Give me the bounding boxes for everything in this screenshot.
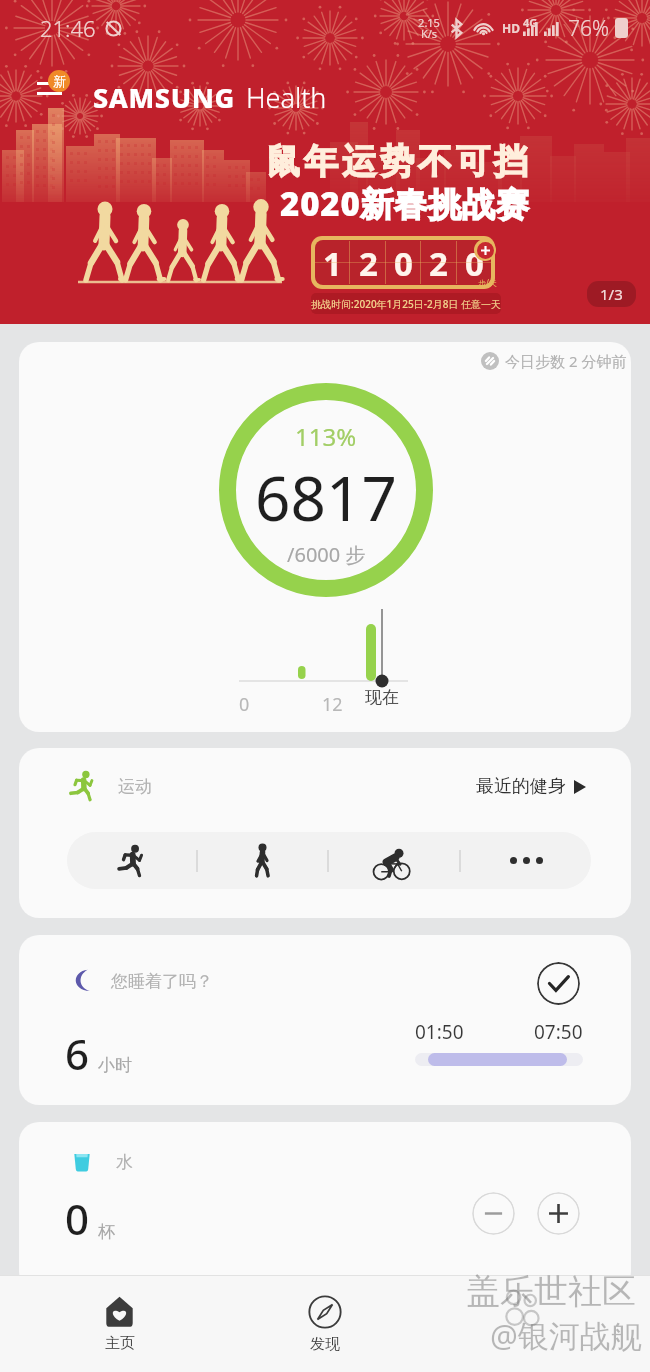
staticText: 07:50 xyxy=(534,1019,583,1045)
button[interactable]: 今日步数 2 分钟前 xyxy=(481,351,627,371)
button[interactable]: 发现 xyxy=(271,1275,379,1372)
staticText: 21:46 xyxy=(40,13,96,43)
staticText: 今日步数 2 分钟前 xyxy=(505,351,627,371)
staticText: 鼠年运势不可挡 xyxy=(264,140,530,183)
staticText: 1/3 xyxy=(600,284,623,304)
staticText: 113% xyxy=(295,420,357,453)
button[interactable]: Running xyxy=(67,832,196,889)
button[interactable]: Walking xyxy=(198,832,327,889)
staticText: 挑战时间:2020年1月25日-2月8日 任意一天 xyxy=(311,297,501,311)
staticText: 您睡着了吗？ xyxy=(111,971,213,992)
staticText: 0 xyxy=(239,692,250,717)
button[interactable]: 主页 xyxy=(65,1275,173,1372)
staticText: 盖乐世社区 xyxy=(466,1270,636,1313)
staticText: 水 xyxy=(116,1152,133,1173)
staticText: 0 xyxy=(394,241,413,284)
button[interactable]: Cycling xyxy=(329,832,459,889)
button[interactable]: 最近的健身 xyxy=(476,775,586,798)
staticText: @银河战舰 xyxy=(490,1314,642,1356)
staticText: 2020新春挑战赛 xyxy=(280,181,530,226)
button[interactable]: Increase water xyxy=(537,1192,580,1235)
staticText: /6000 步 xyxy=(287,541,366,568)
button[interactable]: More xyxy=(461,832,591,889)
staticText: 0 xyxy=(65,1190,90,1247)
staticText: 12 xyxy=(322,692,343,717)
staticText: 6817 xyxy=(255,455,397,539)
staticText: 1 xyxy=(323,241,342,284)
staticText: 步/天 xyxy=(478,277,497,288)
staticText: HD xyxy=(502,20,520,36)
staticText: 小时 xyxy=(98,1055,132,1076)
staticText: Health xyxy=(246,79,327,116)
staticText: 01:50 xyxy=(415,1019,464,1045)
staticText: SAMSUNG xyxy=(93,79,235,116)
staticText: 2 xyxy=(429,241,448,284)
button[interactable]: Decrease water xyxy=(472,1192,515,1235)
staticText: 运动 xyxy=(118,776,152,797)
staticText: 6 xyxy=(65,1025,90,1082)
staticText: 现在 xyxy=(365,687,399,708)
staticText: 杯 xyxy=(98,1221,115,1242)
staticText: 2.15 K/s xyxy=(418,15,440,42)
staticText: 主页 xyxy=(105,1334,135,1353)
staticText: 新 xyxy=(53,73,66,89)
staticText: 76% xyxy=(568,14,610,43)
staticText: 0 xyxy=(465,241,484,284)
staticText: 发现 xyxy=(310,1335,340,1354)
staticText: 最近的健身 xyxy=(476,775,566,798)
staticText: 4G xyxy=(523,15,538,30)
staticText: 2 xyxy=(359,241,378,284)
button[interactable]: Confirm sleep xyxy=(537,962,580,1005)
